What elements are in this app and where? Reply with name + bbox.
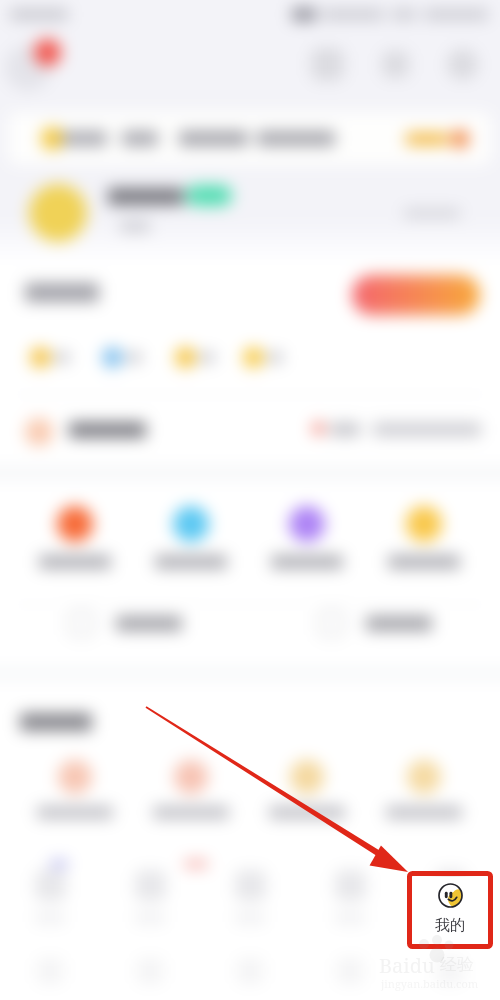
button[interactable]: Top action 1 [311,48,344,81]
button[interactable]: Membership badge [29,184,87,242]
button[interactable]: Action 1 [0,611,250,636]
button[interactable]: Tab 3 [210,870,290,924]
button[interactable]: Promotion [352,275,480,315]
button[interactable]: Action 2 [250,611,500,636]
button[interactable] [102,347,142,368]
button[interactable]: Tab 2 [110,870,190,924]
button[interactable]: Tab 1 [10,870,90,924]
button[interactable]: Top action 3 [447,49,478,80]
button[interactable]: Tab 4 [310,870,390,924]
button[interactable] [379,506,469,569]
button[interactable] [30,347,70,368]
button[interactable]: Profile avatar [5,45,51,91]
button[interactable] [262,506,352,569]
staticText: Baidu [379,952,435,979]
button[interactable] [30,760,120,819]
staticText: 经验 [440,954,474,975]
button[interactable]: Tab 5 [410,870,490,924]
button[interactable] [8,112,492,165]
button[interactable] [243,347,283,368]
button[interactable] [175,347,215,368]
button[interactable]: Top action 2 [382,51,409,78]
button[interactable] [262,760,352,819]
button[interactable] [146,506,236,569]
button[interactable] [30,506,120,569]
staticText: 我的 [435,916,465,935]
button[interactable] [146,760,236,819]
button[interactable] [0,395,500,466]
staticText: jingyan.baidu.com [381,976,479,991]
button[interactable] [379,760,469,819]
button[interactable]: 我的 [413,877,487,943]
